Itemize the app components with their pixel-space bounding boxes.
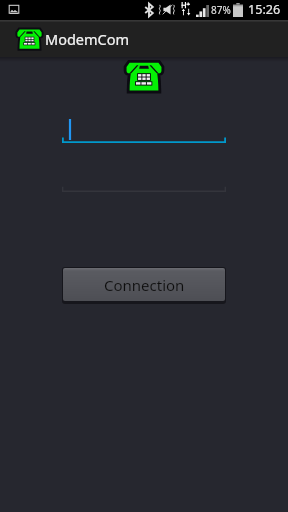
button[interactable] (62, 116, 226, 143)
other: Screenshot captured (8, 4, 20, 15)
staticText: Connection (104, 275, 185, 295)
button[interactable]: ModemCom app icon (0, 22, 288, 57)
staticText: 15:26 (248, 1, 281, 18)
button[interactable]: Connection (63, 268, 225, 303)
other: ModemCom app icon (17, 29, 42, 49)
staticText: ModemCom (45, 29, 130, 49)
staticText: 87% (211, 3, 231, 17)
